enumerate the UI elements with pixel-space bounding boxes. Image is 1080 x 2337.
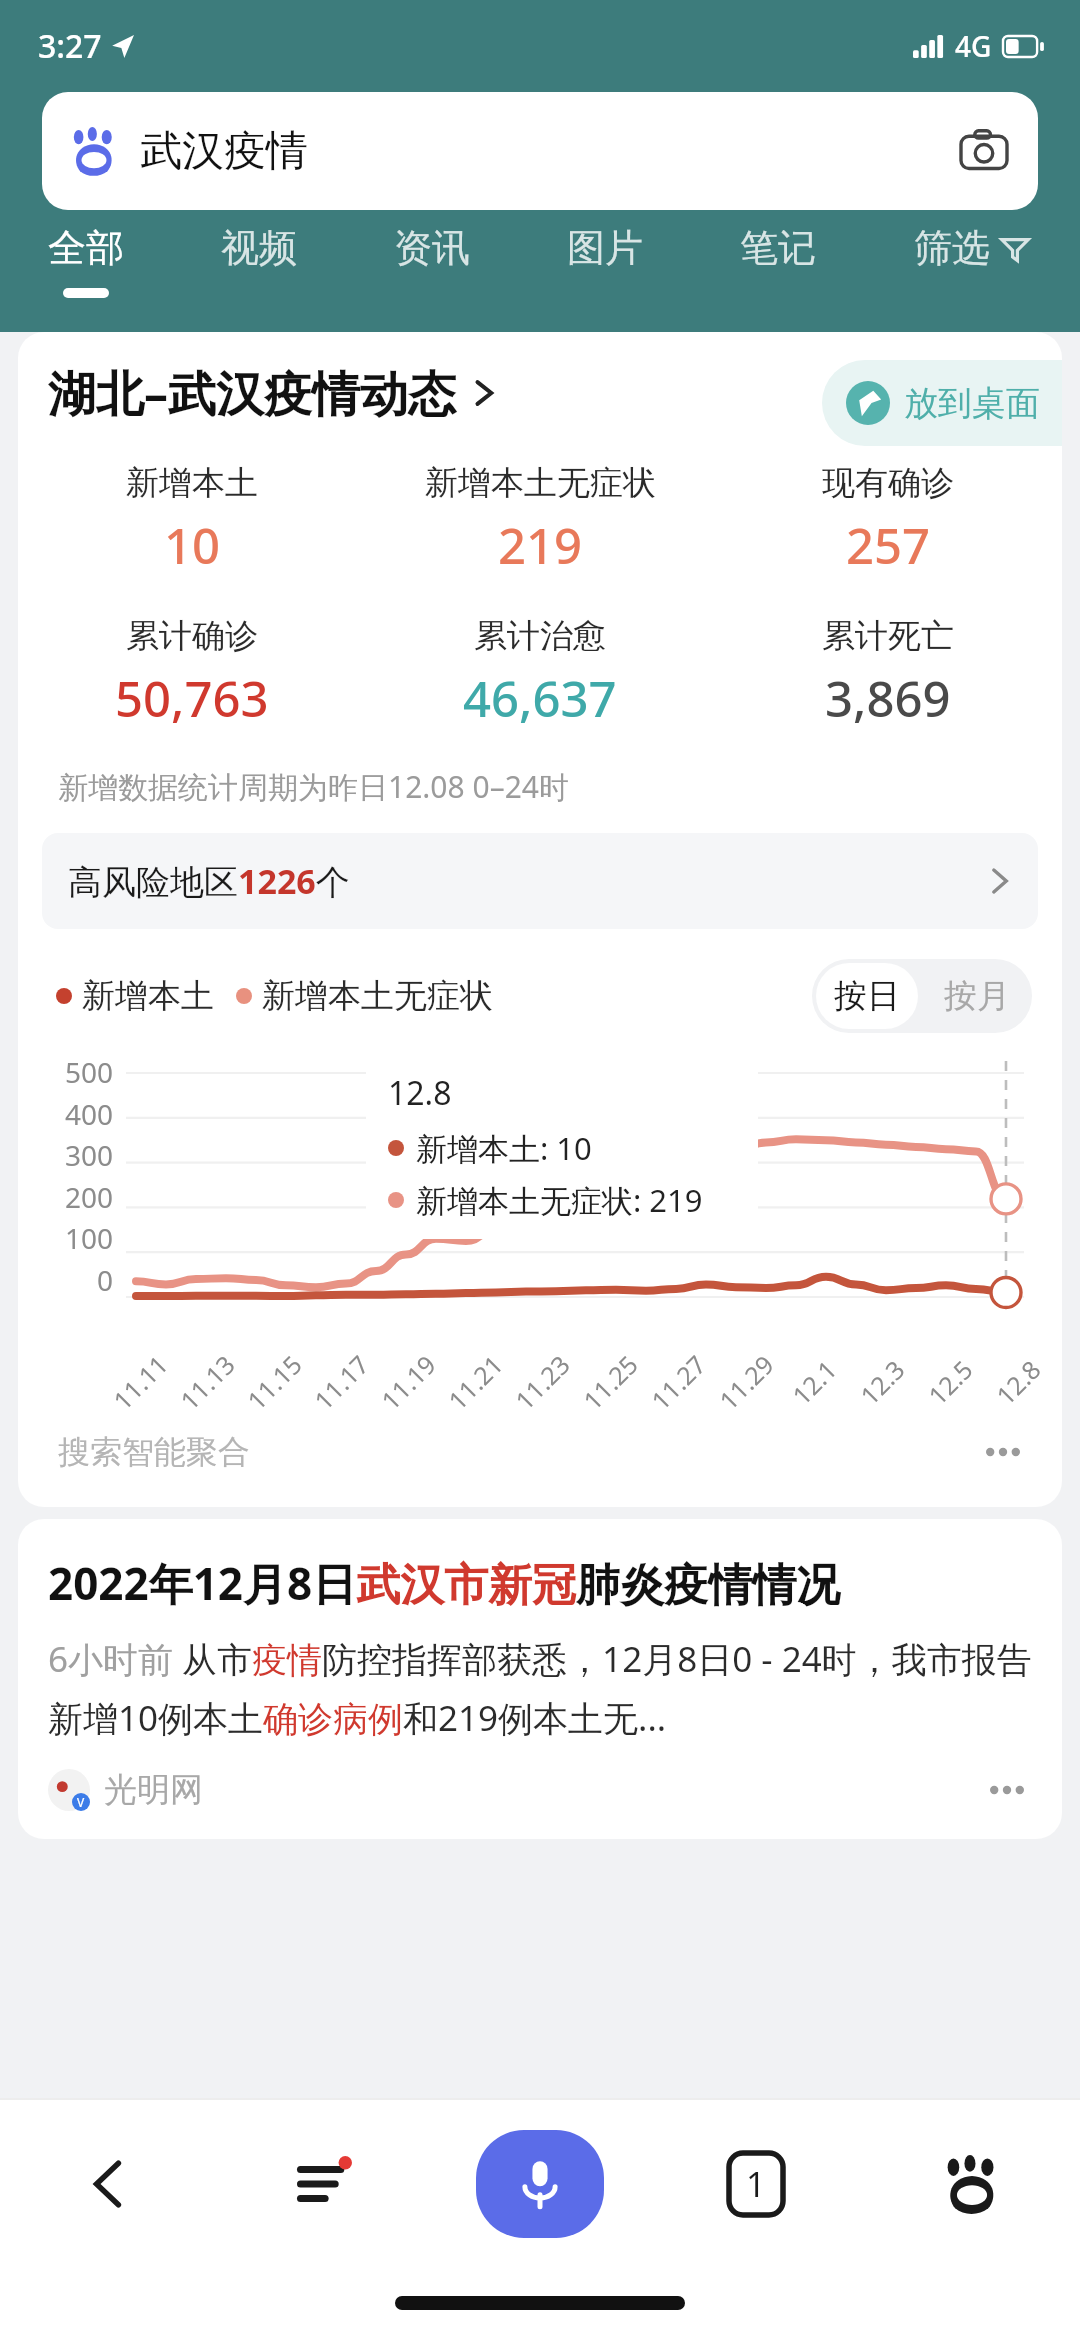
- staticText: 11.19: [373, 1347, 443, 1417]
- staticText: 搜索智能聚合: [58, 1432, 250, 1472]
- staticText: 3:27: [38, 24, 102, 68]
- staticText: 图片: [567, 224, 643, 272]
- staticText: 50,763: [115, 665, 269, 732]
- staticText: 2022年12月8日武汉市新冠肺炎疫情情况: [48, 1553, 841, 1613]
- staticText: 累计治愈: [474, 615, 606, 657]
- staticText: 新增本土: [82, 975, 214, 1017]
- staticText: 12.8: [388, 1071, 452, 1115]
- staticText: 累计确诊: [126, 615, 258, 657]
- button[interactable]: 笔记: [691, 210, 864, 320]
- staticText: 11.17: [306, 1347, 376, 1417]
- staticText: 11.27: [643, 1347, 713, 1417]
- staticText: 219: [498, 512, 583, 579]
- staticText: 12.1: [784, 1352, 844, 1412]
- staticText: 10: [164, 512, 221, 579]
- staticText: 12.5: [920, 1352, 980, 1412]
- staticText: 按月: [944, 975, 1010, 1017]
- staticText: 11.15: [239, 1347, 309, 1417]
- button[interactable]: Tabs: [648, 2100, 864, 2268]
- button[interactable]: 武汉疫情: [42, 92, 1038, 210]
- button[interactable]: Camera search: [958, 125, 1010, 177]
- staticText: 全部: [48, 224, 124, 272]
- staticText: 放到桌面: [904, 382, 1040, 425]
- staticText: 3,869: [825, 665, 951, 732]
- staticText: 4G: [955, 27, 992, 65]
- staticText: 200: [65, 1178, 114, 1216]
- staticText: 高风险地区1226个: [68, 858, 350, 904]
- staticText: 12.3: [852, 1352, 912, 1412]
- staticText: 笔记: [740, 224, 816, 272]
- button[interactable]: 筛选: [864, 210, 1080, 320]
- staticText: V: [77, 1794, 85, 1810]
- staticText: 46,637: [463, 665, 617, 732]
- staticText: 500: [65, 1053, 114, 1091]
- button[interactable]: 2022年12月8日武汉市新冠肺炎疫情情况: [18, 1519, 1062, 1839]
- staticText: 11.23: [507, 1347, 577, 1417]
- button[interactable]: Menu: [216, 2100, 432, 2268]
- staticText: 视频: [221, 224, 297, 272]
- staticText: 1: [746, 2161, 766, 2207]
- staticText: 300: [65, 1136, 114, 1174]
- staticText: 400: [65, 1095, 114, 1133]
- staticText: 12.8: [988, 1352, 1048, 1412]
- button[interactable]: Back: [0, 2100, 216, 2268]
- staticText: 湖北–武汉疫情动态: [48, 360, 457, 426]
- staticText: 累计死亡: [822, 615, 954, 657]
- staticText: 资讯: [394, 224, 470, 272]
- button[interactable]: 视频: [172, 210, 345, 320]
- button[interactable]: 全部: [0, 210, 172, 320]
- staticText: 光明网: [104, 1769, 203, 1811]
- staticText: 按日: [834, 975, 900, 1017]
- staticText: 11.11: [105, 1347, 175, 1417]
- button[interactable]: More options: [982, 1765, 1032, 1815]
- button[interactable]: 资讯: [345, 210, 518, 320]
- button[interactable]: 放到桌面: [822, 360, 1062, 446]
- button[interactable]: Voice search: [476, 2130, 604, 2238]
- button[interactable]: More options: [978, 1427, 1028, 1477]
- button[interactable]: 按日: [816, 963, 918, 1029]
- staticText: 筛选: [914, 224, 990, 272]
- staticText: 6小时前 从市疫情防控指挥部获悉，12月8日0 - 24时，我市报告新增10例本…: [48, 1635, 1032, 1741]
- staticText: 新增数据统计周期为昨日12.08 0–24时: [58, 766, 569, 807]
- staticText: 11.29: [711, 1347, 781, 1417]
- staticText: 11.21: [440, 1347, 510, 1417]
- button[interactable]: 高风险地区1226个: [42, 833, 1038, 929]
- staticText: 新增本土无症状: [425, 462, 656, 504]
- staticText: 11.13: [172, 1347, 242, 1417]
- staticText: 新增本土无症状: [262, 975, 493, 1017]
- staticText: 新增本土: 10: [416, 1127, 592, 1169]
- staticText: 257: [846, 512, 931, 579]
- staticText: 现有确诊: [822, 462, 954, 504]
- button[interactable]: Baidu home: [864, 2100, 1080, 2268]
- button[interactable]: 按月: [922, 959, 1032, 1033]
- staticText: 武汉疫情: [140, 125, 308, 178]
- staticText: 11.25: [575, 1347, 645, 1417]
- staticText: 新增本土: [126, 462, 258, 504]
- staticText: 新增本土无症状: 219: [416, 1179, 703, 1221]
- button[interactable]: 图片: [518, 210, 691, 320]
- staticText: 100: [65, 1219, 114, 1257]
- staticText: 0: [97, 1261, 114, 1299]
